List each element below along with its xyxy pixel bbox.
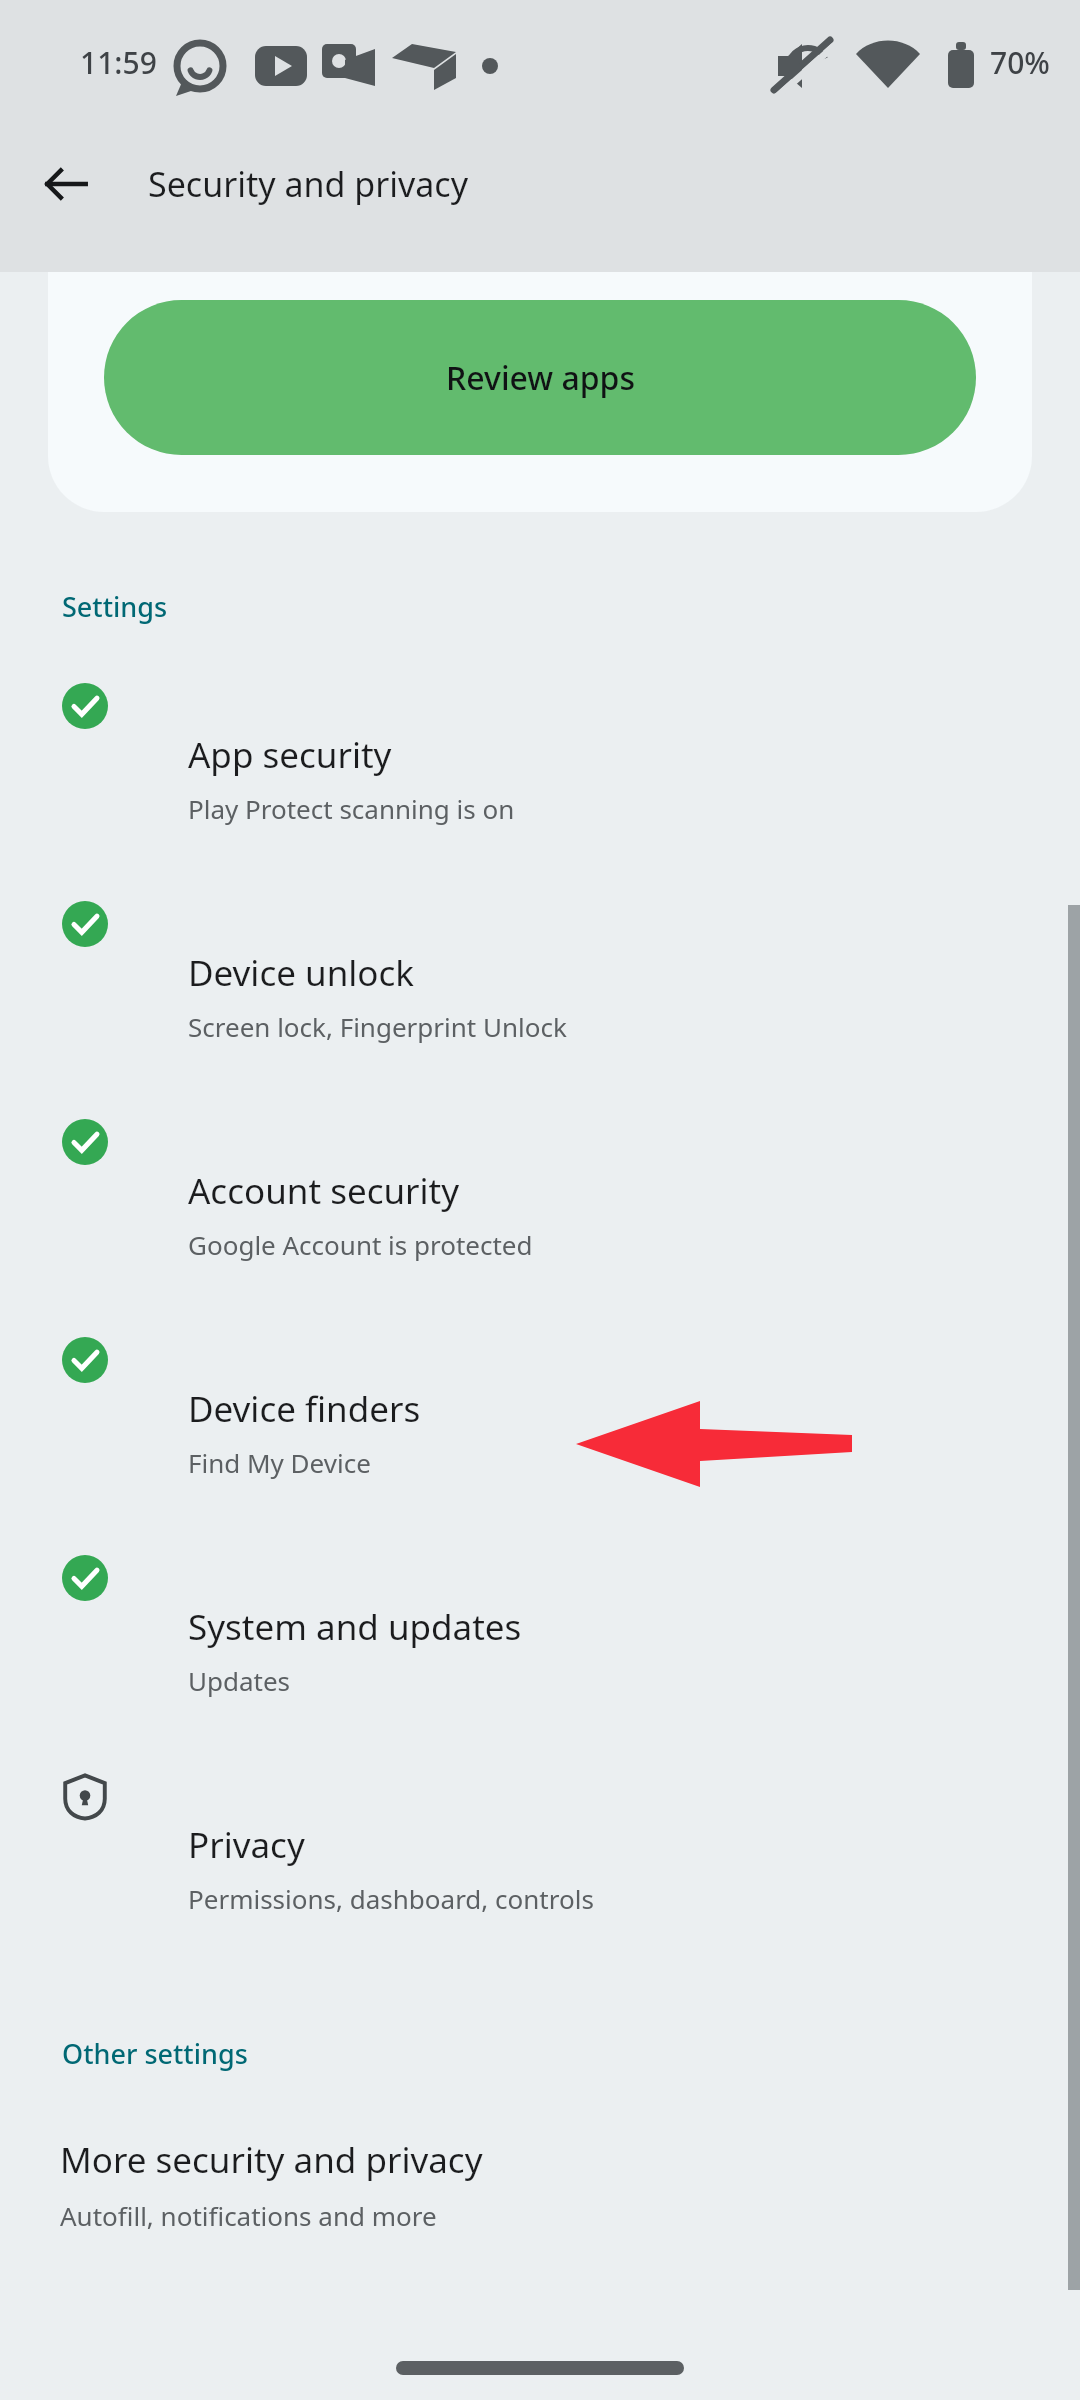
staticText: Device finders [188,1385,421,1433]
button[interactable]: Account security [0,1119,1080,1337]
button[interactable]: More security and privacy [0,2118,1080,2288]
button[interactable]: System and updates [0,1555,1080,1773]
staticText: Permissions, dashboard, controls [188,1881,594,1916]
staticText: App security [188,731,392,779]
staticText: Account security [188,1167,460,1215]
staticText: Autofill, notifications and more [60,2198,437,2233]
staticText: Find My Device [188,1445,371,1480]
staticText: Other settings [62,2035,248,2072]
staticText: Privacy [188,1821,305,1869]
button[interactable]: Device finders [0,1337,1080,1555]
staticText: Screen lock, Fingerprint Unlock [188,1009,567,1044]
button[interactable]: App security [0,683,1080,901]
button[interactable]: Review apps [104,300,976,455]
staticText: Device unlock [188,949,414,997]
staticText: 70% [990,42,1050,83]
button[interactable]: Back [22,140,110,228]
staticText: Review apps [446,356,635,400]
staticText: Settings [62,588,168,625]
staticText: Google Account is protected [188,1227,533,1262]
staticText: 11:59 [80,42,157,83]
button[interactable]: Device unlock [0,901,1080,1119]
staticText: System and updates [188,1603,522,1651]
staticText: Security and privacy [148,161,469,207]
staticText: Play Protect scanning is on [188,791,515,826]
staticText: Updates [188,1663,291,1698]
button[interactable]: Privacy [0,1773,1080,1991]
staticText: More security and privacy [60,2136,483,2184]
